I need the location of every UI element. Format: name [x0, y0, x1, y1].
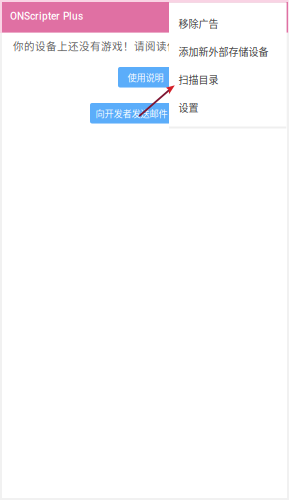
staticText: ONScripter Plus: [10, 10, 83, 22]
staticText: 扫描目录: [178, 72, 218, 87]
button[interactable]: 扫描目录: [169, 65, 286, 93]
staticText: 添加新外部存储设备: [178, 44, 268, 59]
staticText: 设置: [178, 100, 198, 115]
staticText: 你的设备上还没有游戏！请阅读使用说明: [13, 38, 211, 53]
staticText: 移除广告: [178, 16, 218, 31]
button[interactable]: 设置: [169, 93, 286, 121]
button[interactable]: 使用说明: [118, 67, 173, 87]
button[interactable]: 添加新外部存储设备: [169, 37, 286, 65]
button[interactable]: 向开发者发送邮件: [90, 103, 173, 123]
button[interactable]: 移除广告: [169, 9, 286, 37]
staticText: 使用说明: [127, 71, 163, 84]
staticText: 向开发者发送邮件: [95, 107, 167, 120]
